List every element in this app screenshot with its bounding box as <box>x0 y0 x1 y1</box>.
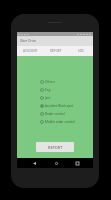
staticText: Fog <box>45 88 51 92</box>
button[interactable]: REPORT <box>43 46 68 56</box>
staticText: Radar control <box>45 112 65 116</box>
staticText: Jam <box>45 96 51 100</box>
staticText: SOS <box>78 49 84 53</box>
button[interactable]: Home <box>52 159 60 167</box>
button[interactable]: Others <box>40 78 55 86</box>
button[interactable]: Back <box>30 159 38 167</box>
staticText: Accident Black spot <box>45 104 74 108</box>
staticText: REPORT <box>50 49 62 53</box>
button[interactable]: SOS <box>68 46 93 56</box>
staticText: Uber Drive <box>20 39 37 43</box>
staticText: Mobile radar control <box>45 120 75 124</box>
button[interactable]: Recent apps <box>73 159 81 167</box>
button[interactable]: Mobile radar control <box>40 118 75 126</box>
staticText: REPORT <box>48 145 63 150</box>
staticText: Others <box>45 80 55 84</box>
button[interactable]: Radar control <box>40 110 65 118</box>
staticText: ACCOUNT <box>23 49 38 53</box>
button[interactable]: Jam <box>40 94 51 102</box>
button[interactable]: Fog <box>40 86 51 94</box>
button[interactable]: Accident Black spot <box>40 102 74 110</box>
button[interactable]: REPORT <box>36 142 74 152</box>
button[interactable]: ACCOUNT <box>17 46 43 56</box>
